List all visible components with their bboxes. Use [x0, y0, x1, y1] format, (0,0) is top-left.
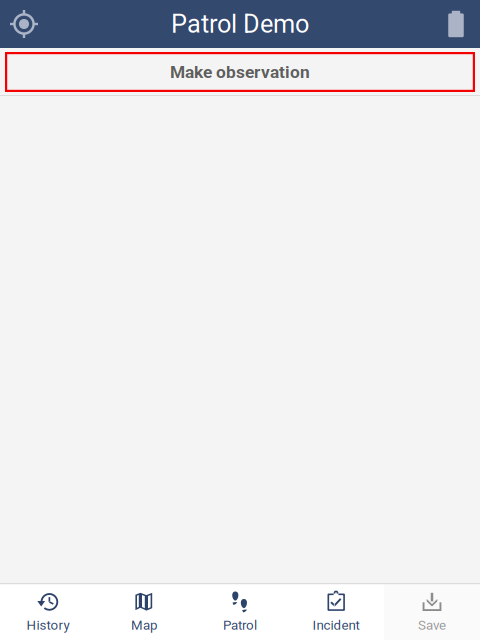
button[interactable]: History: [0, 584, 96, 640]
button[interactable]: Incident: [288, 584, 384, 640]
staticText: Map: [131, 617, 157, 633]
staticText: Patrol Demo: [171, 9, 309, 39]
staticText: History: [26, 617, 69, 633]
button[interactable]: Recentre on my location: [0, 0, 48, 48]
staticText: Patrol: [223, 617, 257, 633]
button[interactable]: Battery status: [432, 0, 480, 48]
button[interactable]: Save: [384, 584, 480, 640]
button[interactable]: Map: [96, 584, 192, 640]
staticText: Make observation: [170, 62, 310, 82]
staticText: Incident: [312, 617, 359, 633]
button[interactable]: Patrol: [192, 584, 288, 640]
button[interactable]: Make observation: [5, 52, 475, 92]
staticText: Save: [418, 617, 446, 633]
